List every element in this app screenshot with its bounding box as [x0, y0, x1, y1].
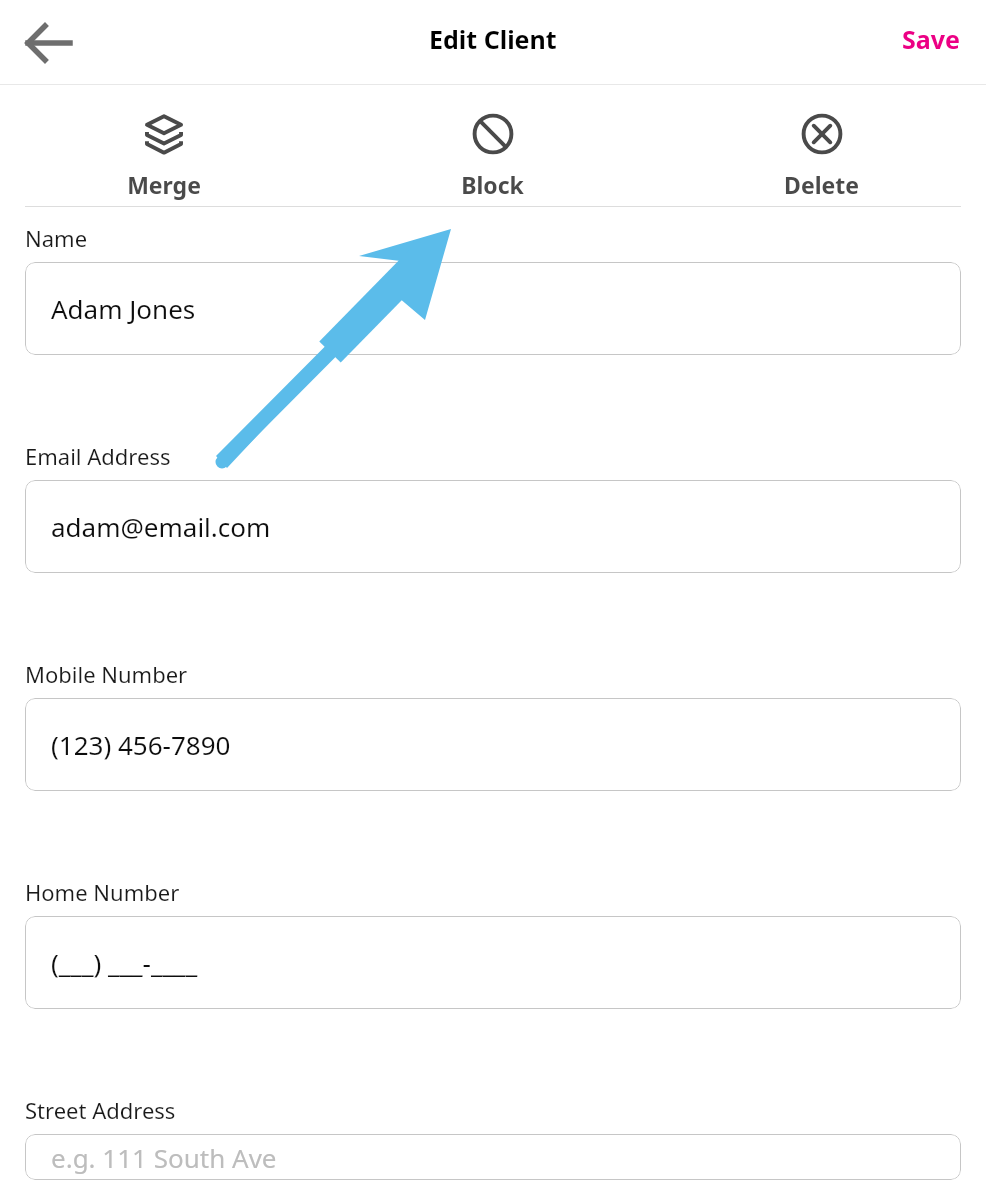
staticText: e.g. 111 South Ave [51, 1140, 277, 1175]
staticText: Delete [784, 169, 859, 200]
staticText: (123) 456-7890 [51, 727, 231, 762]
button[interactable]: Save [876, 8, 986, 70]
button[interactable]: (123) 456-7890 [25, 698, 961, 791]
button[interactable]: Back [8, 3, 88, 83]
button[interactable]: Adam Jones [25, 262, 961, 355]
staticText: Save [902, 22, 960, 56]
staticText: Adam Jones [51, 291, 196, 326]
staticText: Mobile Number [25, 659, 188, 689]
button[interactable]: Delete [657, 107, 986, 204]
button[interactable]: e.g. 111 South Ave [25, 1134, 961, 1180]
staticText: Home Number [25, 877, 180, 907]
button[interactable]: Merge [0, 107, 328, 204]
staticText: (___) ___-____ [51, 945, 198, 980]
button[interactable]: Block [328, 107, 657, 204]
staticText: Name [25, 223, 88, 253]
staticText: Street Address [25, 1095, 176, 1125]
staticText: Block [461, 169, 524, 200]
staticText: Email Address [25, 441, 171, 471]
staticText: Merge [127, 169, 201, 200]
staticText: Edit Client [429, 22, 557, 56]
staticText: adam@email.com [51, 509, 271, 544]
button[interactable]: adam@email.com [25, 480, 961, 573]
button[interactable]: (___) ___-____ [25, 916, 961, 1009]
